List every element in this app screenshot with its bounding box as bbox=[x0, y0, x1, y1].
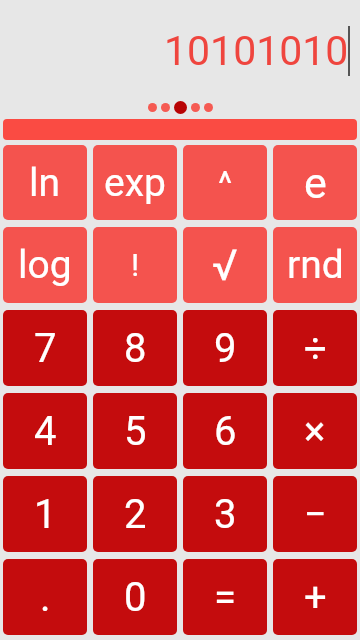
button[interactable]: ! bbox=[93, 227, 177, 303]
button[interactable]: 9 bbox=[183, 310, 267, 386]
staticText: ! bbox=[131, 246, 140, 284]
staticText: e bbox=[304, 158, 327, 208]
staticText: ÷ bbox=[304, 325, 327, 372]
staticText: rnd bbox=[287, 242, 344, 288]
button[interactable]: 5 bbox=[93, 393, 177, 469]
button[interactable]: ÷ bbox=[273, 310, 357, 386]
staticText: 9 bbox=[214, 325, 237, 372]
staticText: + bbox=[304, 574, 327, 621]
staticText: 1 bbox=[34, 491, 57, 538]
button[interactable]: 1 bbox=[3, 476, 87, 552]
button[interactable]: e bbox=[273, 145, 357, 220]
button[interactable]: + bbox=[273, 559, 357, 635]
staticText: × bbox=[304, 408, 326, 455]
button[interactable]: 4 bbox=[3, 393, 87, 469]
staticText: 2 bbox=[124, 491, 147, 538]
button[interactable]: × bbox=[273, 393, 357, 469]
button[interactable]: 2 bbox=[93, 476, 177, 552]
staticText: = bbox=[214, 574, 236, 621]
button[interactable]: √ bbox=[183, 227, 267, 303]
staticText: ^ bbox=[218, 163, 233, 203]
button[interactable]: 6 bbox=[183, 393, 267, 469]
button[interactable]: 0 bbox=[93, 559, 177, 635]
staticText: log bbox=[18, 242, 72, 288]
staticText: 7 bbox=[34, 325, 57, 372]
button[interactable]: ^ bbox=[183, 145, 267, 220]
staticText: 0 bbox=[124, 574, 147, 621]
button[interactable]: 8 bbox=[93, 310, 177, 386]
staticText: − bbox=[304, 491, 327, 538]
button[interactable]: ln bbox=[3, 145, 87, 220]
staticText: 6 bbox=[214, 408, 237, 455]
button[interactable] bbox=[3, 119, 357, 140]
staticText: ln bbox=[29, 160, 61, 206]
button[interactable]: 3 bbox=[183, 476, 267, 552]
staticText: 5 bbox=[124, 408, 147, 455]
button[interactable]: log bbox=[3, 227, 87, 303]
staticText: 3 bbox=[214, 491, 237, 538]
staticText: √ bbox=[212, 240, 238, 290]
staticText: 8 bbox=[124, 325, 147, 372]
button[interactable]: . bbox=[3, 559, 87, 635]
button[interactable]: exp bbox=[93, 145, 177, 220]
staticText: . bbox=[40, 574, 51, 621]
button[interactable]: 7 bbox=[3, 310, 87, 386]
staticText: exp bbox=[104, 160, 166, 206]
staticText: 10101010 bbox=[164, 27, 349, 75]
button[interactable]: rnd bbox=[273, 227, 357, 303]
staticText: 4 bbox=[34, 408, 57, 455]
button[interactable]: = bbox=[183, 559, 267, 635]
button[interactable]: − bbox=[273, 476, 357, 552]
